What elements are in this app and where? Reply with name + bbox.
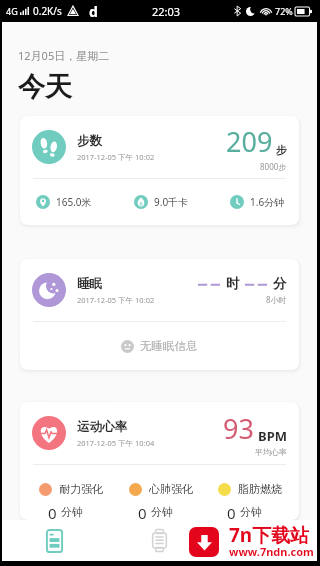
staticText: 93 bbox=[223, 410, 254, 447]
staticText: 2017-12-05 下午 10:02 bbox=[77, 295, 155, 305]
staticText: 165.0米 bbox=[56, 195, 92, 209]
staticText: 时 bbox=[226, 275, 240, 292]
staticText: 耐力强化 bbox=[59, 482, 103, 496]
staticText: 0 bbox=[227, 503, 236, 520]
staticText: 22:03 bbox=[152, 4, 181, 19]
staticText: 1.6分钟 bbox=[250, 195, 285, 209]
staticText: 分钟 bbox=[240, 505, 262, 519]
staticText: 4G bbox=[6, 5, 18, 17]
staticText: 8小时 bbox=[266, 294, 287, 305]
staticText: 分 bbox=[273, 275, 287, 292]
staticText: d bbox=[89, 2, 98, 21]
staticText: 72% bbox=[275, 5, 293, 17]
button[interactable]: 健康数据 bbox=[2, 520, 107, 561]
staticText: 0.2K/s bbox=[33, 4, 62, 18]
staticText: 步数 bbox=[77, 133, 102, 149]
staticText: 0 bbox=[48, 503, 57, 520]
button[interactable]: 我的 bbox=[212, 520, 317, 561]
staticText: 0 bbox=[138, 503, 147, 520]
button[interactable]: 设备 bbox=[107, 520, 212, 561]
staticText: 睡眠 bbox=[77, 276, 102, 292]
staticText: 无睡眠信息 bbox=[140, 339, 198, 353]
staticText: 平均心率 bbox=[255, 447, 287, 457]
staticText: 脂肪燃烧 bbox=[238, 482, 282, 496]
staticText: BPM bbox=[258, 427, 287, 445]
staticText: 2017-12-05 下午 10:04 bbox=[77, 438, 155, 448]
staticText: 2017-12-05 下午 10:02 bbox=[77, 152, 155, 162]
staticText: 12月05日，星期二 bbox=[18, 48, 110, 63]
staticText: 分钟 bbox=[61, 505, 83, 519]
staticText: 9.0千卡 bbox=[154, 195, 189, 209]
staticText: 209 bbox=[226, 123, 273, 160]
button[interactable]: 运动心率 bbox=[20, 402, 299, 520]
staticText: 心肺强化 bbox=[149, 482, 193, 496]
button[interactable]: 步数 bbox=[20, 116, 299, 225]
button[interactable]: 睡眠 bbox=[20, 259, 299, 370]
staticText: 步 bbox=[276, 143, 287, 157]
staticText: 分钟 bbox=[151, 505, 173, 519]
staticText: 7n下载站 bbox=[229, 522, 310, 548]
staticText: www.7ndn.com bbox=[229, 544, 314, 559]
staticText: 8000步 bbox=[260, 161, 287, 172]
staticText: 运动心率 bbox=[77, 419, 127, 435]
staticText: 今天 bbox=[18, 70, 72, 104]
